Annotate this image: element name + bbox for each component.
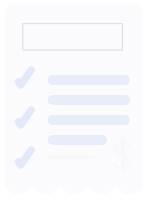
button[interactable]: Receipt illustration <box>0 0 146 200</box>
